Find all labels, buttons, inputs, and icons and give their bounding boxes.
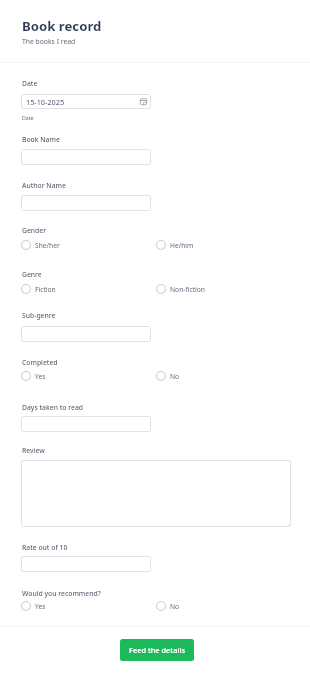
staticText: Days taken to read [22,403,84,412]
staticText: Non-fiction [170,285,205,294]
staticText: Date [22,79,38,88]
staticText: Gender [22,226,47,235]
button[interactable]: Fiction [21,283,56,295]
staticText: He/him [170,241,194,250]
button[interactable]: Non-fiction [156,283,205,295]
button[interactable]: Yes [21,370,46,382]
button[interactable]: 15-10-2025 [21,94,151,109]
staticText: Sub-genre [22,311,56,320]
button[interactable]: Feed the details [120,639,194,661]
staticText: Author Name [22,181,66,190]
button[interactable]: He/him [156,239,194,251]
button[interactable]: No [156,370,180,382]
button[interactable]: She/her [21,239,60,251]
staticText: Rate out of 10 [22,543,68,552]
staticText: 15-10-2025 [26,97,65,107]
button[interactable] [21,149,151,165]
staticText: Yes [35,372,46,381]
staticText: No [170,602,180,611]
button[interactable] [21,460,291,527]
staticText: Yes [35,602,46,611]
staticText: Fiction [35,285,56,294]
button[interactable]: No [156,600,180,612]
other: Pick date [140,98,147,105]
staticText: Feed the details [129,645,185,655]
staticText: Book Name [22,135,60,144]
button[interactable] [21,416,151,432]
staticText: No [170,372,180,381]
staticText: Review [22,446,45,455]
staticText: She/her [35,241,60,250]
button[interactable] [21,195,151,211]
staticText: Completed [22,358,58,367]
staticText: Would you recommend? [22,589,101,598]
button[interactable] [21,556,151,572]
button[interactable]: Yes [21,600,46,612]
staticText: Book record [22,17,102,35]
staticText: Date [22,114,34,121]
staticText: The books I read [22,37,76,46]
staticText: Genre [22,270,42,279]
button[interactable] [21,326,151,342]
